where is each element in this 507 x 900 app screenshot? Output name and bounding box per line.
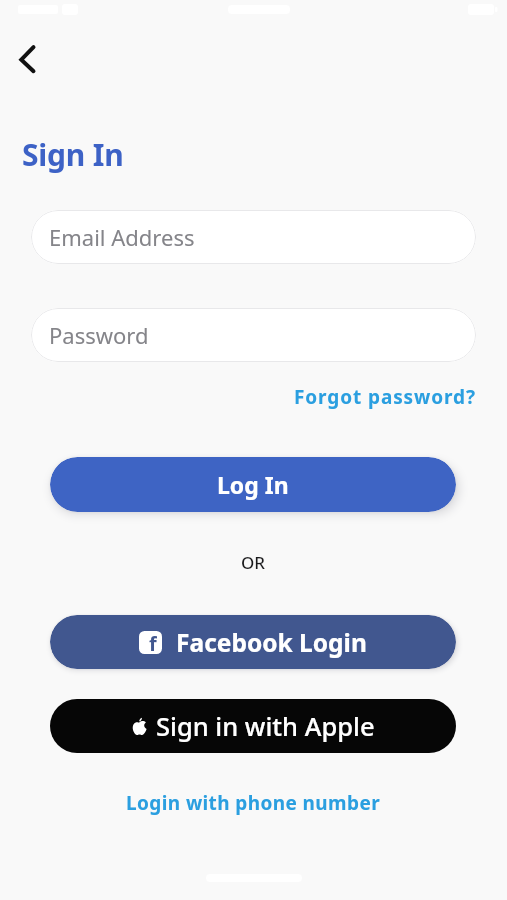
- button[interactable]: Email Address: [31, 210, 476, 264]
- button[interactable]: Password: [31, 308, 476, 362]
- staticText: Sign In: [22, 134, 124, 175]
- staticText: Sign in with Apple: [156, 709, 375, 744]
- staticText: OR: [241, 551, 266, 574]
- staticText: f: [149, 631, 157, 653]
- button[interactable]: Login with phone number: [126, 790, 381, 816]
- staticText: Log In: [217, 469, 289, 500]
- button[interactable]: f: [50, 615, 456, 669]
- staticText: Password: [49, 320, 149, 350]
- button[interactable]: Forgot password?: [294, 384, 476, 410]
- button[interactable]: [12, 40, 48, 76]
- button[interactable]: Log In: [50, 457, 456, 512]
- staticText: Email Address: [49, 222, 195, 252]
- staticText: Facebook Login: [176, 626, 367, 659]
- button[interactable]: Sign in with Apple: [50, 699, 456, 753]
